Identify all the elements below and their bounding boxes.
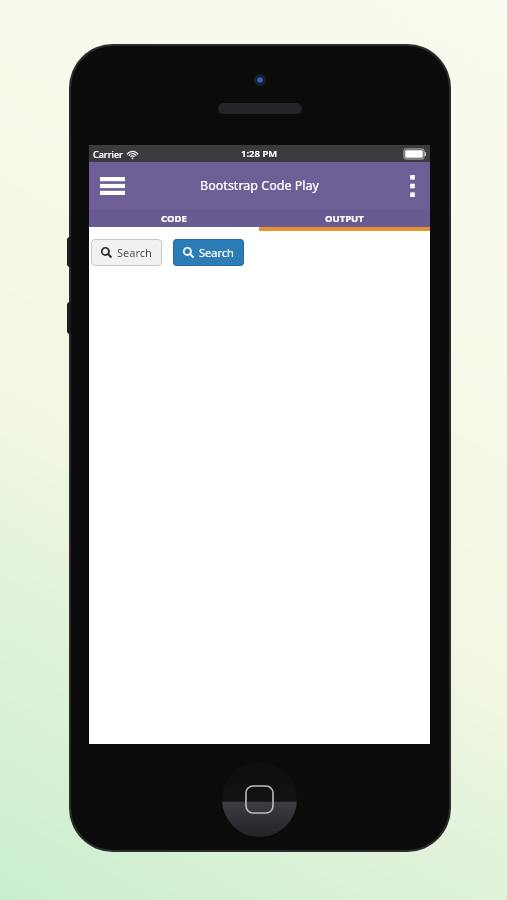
staticText: Search: [117, 245, 152, 260]
staticText: 1:28 PM: [241, 147, 278, 160]
button[interactable]: More options: [400, 169, 424, 203]
button[interactable]: OUTPUT: [259, 209, 430, 227]
staticText: Bootstrap Code Play: [200, 177, 319, 194]
button[interactable]: Open navigation menu: [95, 169, 129, 203]
staticText: Carrier: [93, 148, 123, 160]
button[interactable]: Home: [222, 762, 297, 837]
button[interactable]: CODE: [89, 209, 259, 227]
button[interactable]: Search: [173, 239, 244, 266]
staticText: CODE: [161, 212, 187, 225]
staticText: OUTPUT: [325, 212, 364, 225]
staticText: Search: [199, 245, 234, 260]
button[interactable]: Search: [91, 239, 162, 266]
